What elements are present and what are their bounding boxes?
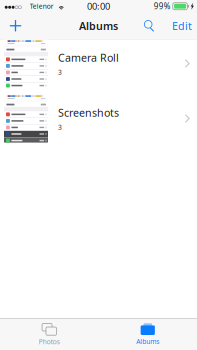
button[interactable]: Photos <box>0 319 98 350</box>
button[interactable]: Search <box>139 14 159 38</box>
button[interactable]: Albums <box>98 319 197 350</box>
staticText: Camera Roll <box>58 51 119 65</box>
staticText: Albums <box>79 19 118 33</box>
staticText: 3 <box>58 123 62 132</box>
staticText: 99% <box>154 1 171 11</box>
button[interactable]: Screenshots <box>0 95 197 143</box>
staticText: Edit <box>172 19 192 33</box>
staticText: Screenshots <box>58 106 119 120</box>
button[interactable]: Add Album <box>4 14 26 38</box>
button[interactable]: Edit <box>168 14 197 38</box>
staticText: Photos <box>39 337 60 346</box>
staticText: 3 <box>58 68 62 77</box>
staticText: Telenor <box>30 2 54 11</box>
staticText: Albums <box>136 337 159 346</box>
staticText: 00:00 <box>87 0 110 12</box>
button[interactable]: Camera Roll <box>0 40 197 88</box>
